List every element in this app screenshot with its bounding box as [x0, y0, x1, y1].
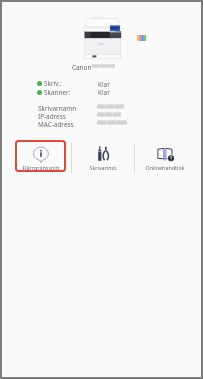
staticText: Fjärrgränssnitt: [22, 164, 60, 171]
staticText: IP-adress: [38, 112, 66, 121]
staticText: Onlinehandbok: [145, 164, 185, 171]
staticText: Canon: [72, 63, 92, 72]
staticText: Klar: [98, 88, 110, 97]
staticText: Klar: [98, 80, 110, 89]
staticText: Skrivarinst.: [89, 164, 118, 171]
other: Printer settings: [97, 146, 110, 162]
button[interactable]: [136, 140, 198, 172]
staticText: MAC-adress: [38, 120, 74, 129]
staticText: Skriv.:: [44, 79, 62, 88]
button[interactable]: [72, 140, 133, 172]
other: Remote interface: [33, 146, 49, 164]
staticText: Skrivarnamn: [38, 104, 77, 113]
other: Online manual: [155, 146, 175, 163]
staticText: Skanner:: [44, 88, 71, 97]
button[interactable]: [15, 140, 66, 172]
